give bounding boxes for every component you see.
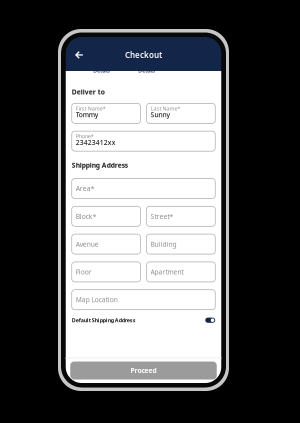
staticText: Last Name* bbox=[150, 105, 180, 112]
button[interactable]: Back bbox=[71, 47, 87, 63]
staticText: Checkout bbox=[125, 50, 162, 60]
staticText: Proceed bbox=[130, 366, 156, 375]
staticText: Deliver to bbox=[72, 87, 105, 96]
staticText: 23423412xx bbox=[76, 138, 116, 147]
staticText: Avenue bbox=[76, 240, 99, 249]
staticText: Phone* bbox=[76, 133, 94, 140]
staticText: Floor bbox=[76, 267, 92, 276]
staticText: Shipping Address bbox=[72, 161, 128, 170]
staticText: Map Location bbox=[76, 295, 118, 304]
button[interactable]: Default Shipping Address bbox=[205, 316, 215, 324]
staticText: Street* bbox=[150, 212, 173, 221]
staticText: Building bbox=[150, 240, 176, 249]
staticText: Apartment bbox=[150, 267, 183, 276]
staticText: Tommy bbox=[76, 110, 99, 119]
staticText: Block* bbox=[76, 212, 97, 221]
staticText: Default Shipping Address bbox=[72, 317, 136, 324]
staticText: First Name* bbox=[76, 105, 106, 112]
staticText: Sunny bbox=[150, 110, 170, 119]
button[interactable]: Proceed bbox=[70, 361, 217, 379]
staticText: Area* bbox=[76, 184, 95, 193]
staticText: Details bbox=[138, 67, 155, 74]
staticText: Details bbox=[93, 67, 110, 74]
